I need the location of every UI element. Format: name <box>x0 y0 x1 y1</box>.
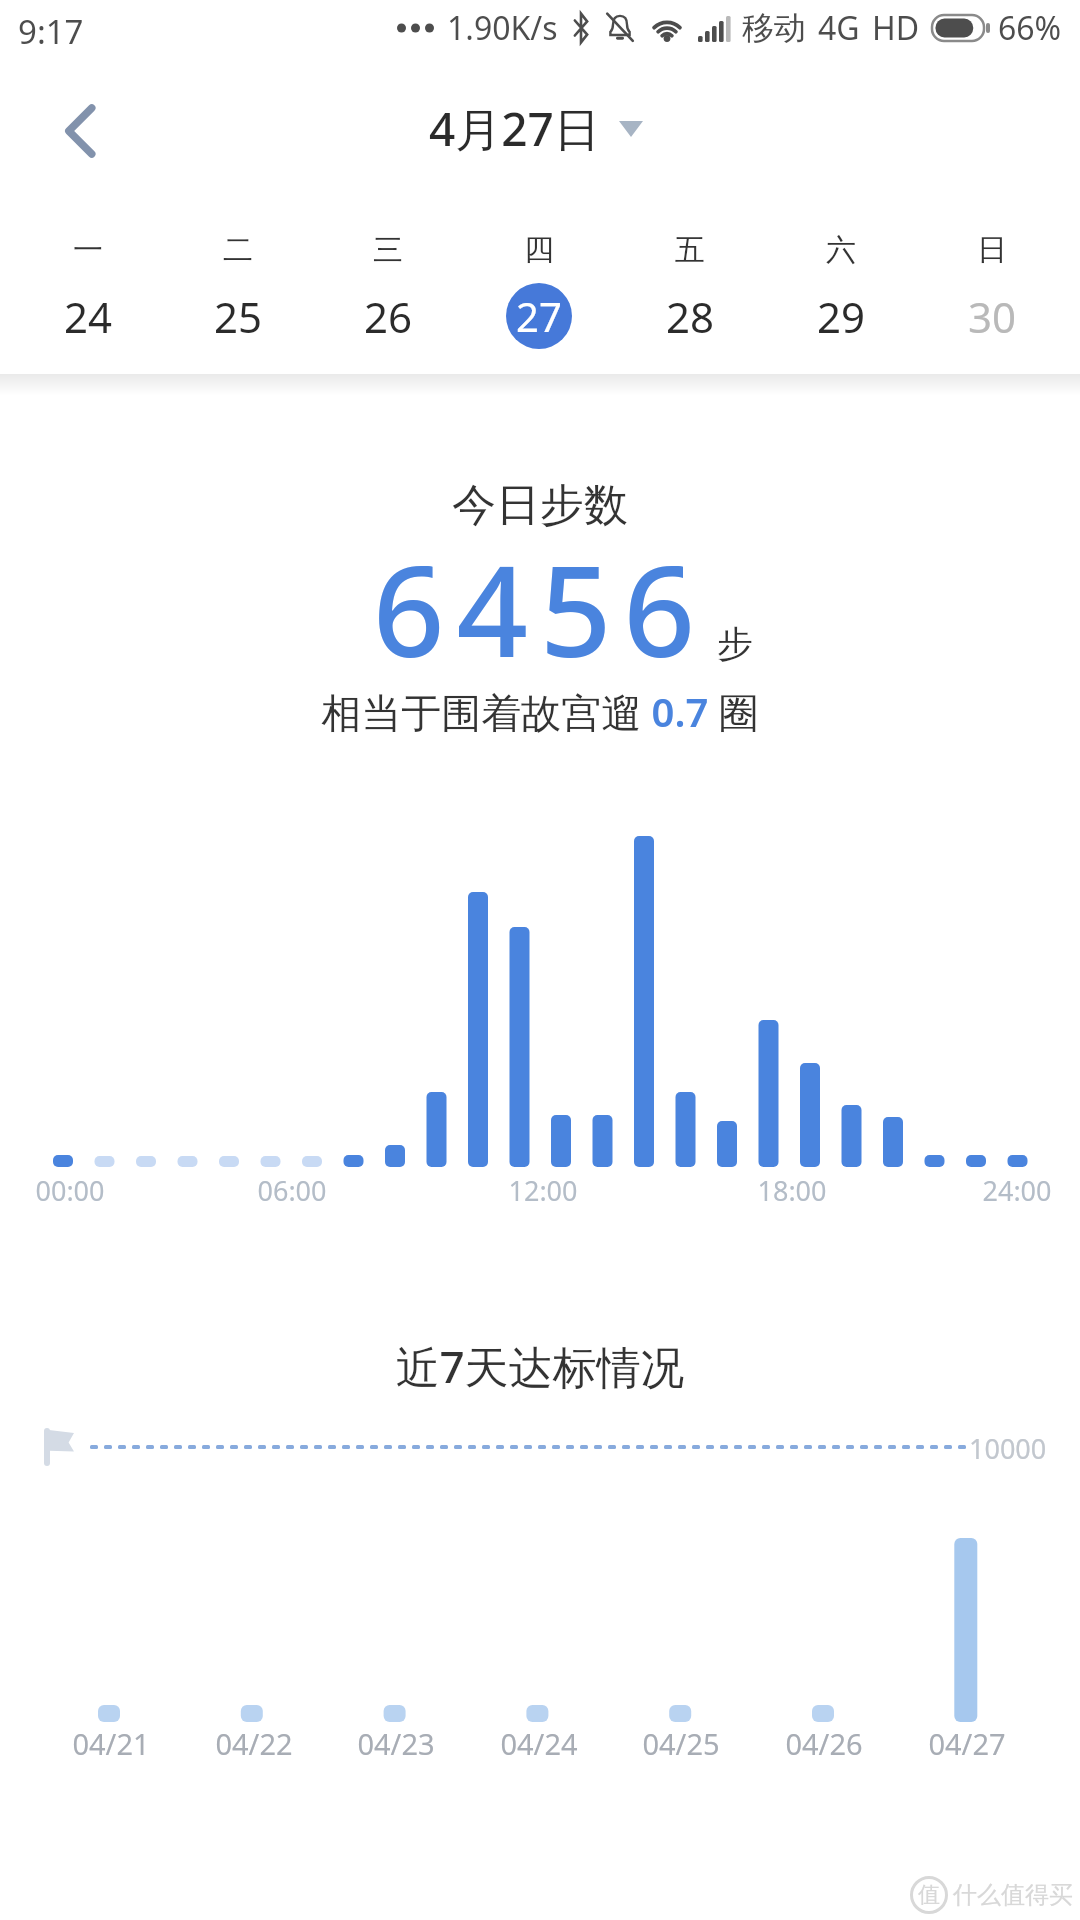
staticText: 6456 <box>0 523 1080 693</box>
staticText: 04/22 <box>184 1724 324 1763</box>
staticText: 27 <box>516 289 562 343</box>
staticText: 24:00 <box>957 1172 1077 1209</box>
staticText: 日 <box>977 231 1007 269</box>
staticText: 04/21 <box>41 1724 181 1763</box>
staticText: 四 <box>524 231 554 269</box>
staticText: 04/23 <box>326 1724 466 1763</box>
staticText: 26 <box>364 288 413 345</box>
staticText: 二 <box>223 231 253 269</box>
staticText: 29 <box>817 288 866 345</box>
staticText: 4G <box>818 6 860 50</box>
staticText: 步 <box>717 621 753 666</box>
staticText: 六 <box>826 231 856 269</box>
staticText: 值 <box>918 1881 940 1909</box>
button[interactable]: 六 <box>765 231 916 349</box>
staticText: 什么值得买 <box>953 1880 1073 1910</box>
button[interactable]: 4月27日 <box>429 97 644 160</box>
staticText: 今日步数 <box>0 478 1080 533</box>
staticText: 25 <box>214 288 263 345</box>
button[interactable]: 一 <box>13 231 163 349</box>
button[interactable]: 二 <box>163 231 313 349</box>
staticText: 30 <box>968 288 1017 345</box>
staticText: 1.90K/s <box>447 6 558 50</box>
staticText: 06:00 <box>232 1172 352 1209</box>
staticText: 移动 <box>742 8 806 48</box>
staticText: 04/26 <box>754 1724 894 1763</box>
staticText: 04/25 <box>611 1724 751 1763</box>
staticText: HD <box>872 6 920 50</box>
staticText: 4月27日 <box>429 97 600 160</box>
button[interactable]: 四 <box>463 231 614 349</box>
staticText: 66% <box>998 6 1062 50</box>
staticText: 相当于围着故宫遛 0.7 圈 <box>0 684 1080 739</box>
staticText: 近7天达标情况 <box>0 1336 1080 1396</box>
staticText: 24 <box>64 288 113 345</box>
staticText: 10000 <box>969 1430 1047 1467</box>
staticText: 00:00 <box>10 1172 130 1209</box>
staticText: 04/24 <box>469 1724 609 1763</box>
button[interactable] <box>40 91 120 171</box>
staticText: 9:17 <box>18 9 84 54</box>
staticText: 18:00 <box>732 1172 852 1209</box>
button[interactable]: 日 <box>916 231 1067 349</box>
button[interactable]: 五 <box>614 231 765 349</box>
staticText: 五 <box>675 231 705 269</box>
staticText: 04/27 <box>897 1724 1037 1763</box>
staticText: 12:00 <box>483 1172 603 1209</box>
button[interactable]: 三 <box>313 231 463 349</box>
staticText: 三 <box>373 231 403 269</box>
staticText: 一 <box>73 231 103 269</box>
staticText: 28 <box>666 288 715 345</box>
